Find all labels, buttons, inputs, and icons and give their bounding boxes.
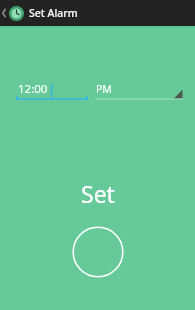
staticText: Set Alarm [29, 6, 78, 20]
staticText: 12:00 [18, 81, 48, 97]
button[interactable]: Alarm indicator [71, 225, 125, 279]
button[interactable]: PM [95, 78, 183, 104]
button[interactable]: Navigate up, Set Alarm [0, 0, 195, 26]
staticText: PM [96, 82, 112, 96]
button[interactable]: 12:00 [16, 78, 88, 104]
staticText: Set [81, 178, 115, 209]
button[interactable]: Set [58, 176, 138, 210]
